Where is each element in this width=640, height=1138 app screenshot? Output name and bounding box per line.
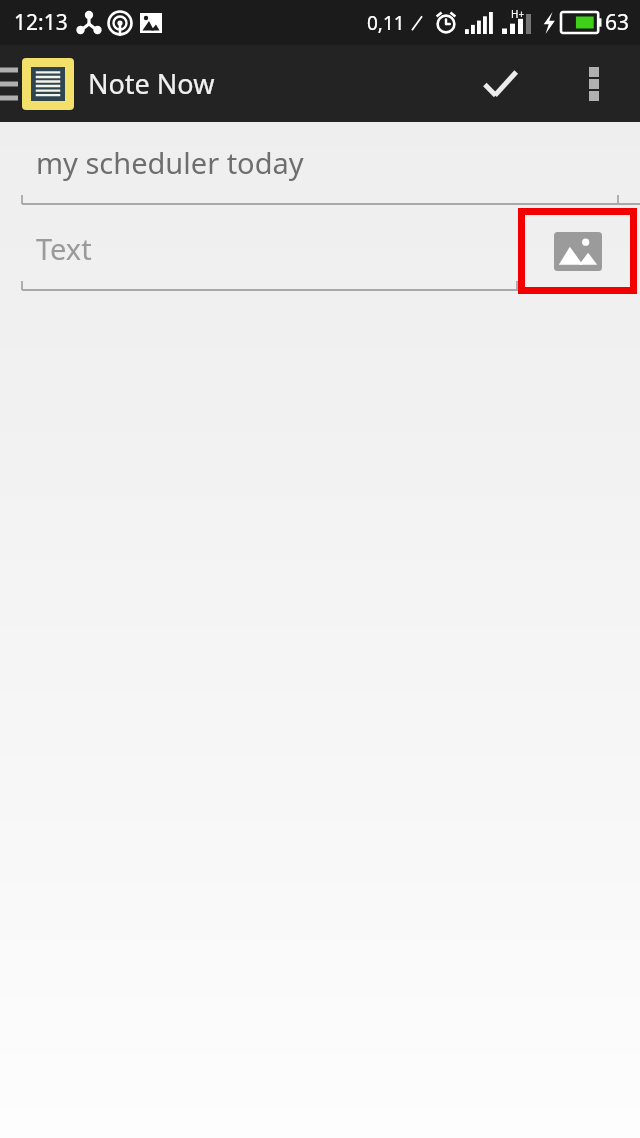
button[interactable]: my scheduler today [0,122,640,208]
button[interactable]: Text [0,208,518,294]
staticText: Text [36,229,92,268]
staticText: 63 [605,8,630,37]
button[interactable]: Save note [472,56,528,112]
staticText: my scheduler today [36,143,304,182]
button[interactable]: Attach image [518,208,637,294]
staticText: 12:13 [14,8,68,37]
staticText: 0,11 [367,10,405,36]
staticText: Note Now [88,65,215,102]
button[interactable]: Open navigation drawer [0,67,18,101]
staticText: H+ [511,7,525,21]
button[interactable]: More options [568,58,620,110]
